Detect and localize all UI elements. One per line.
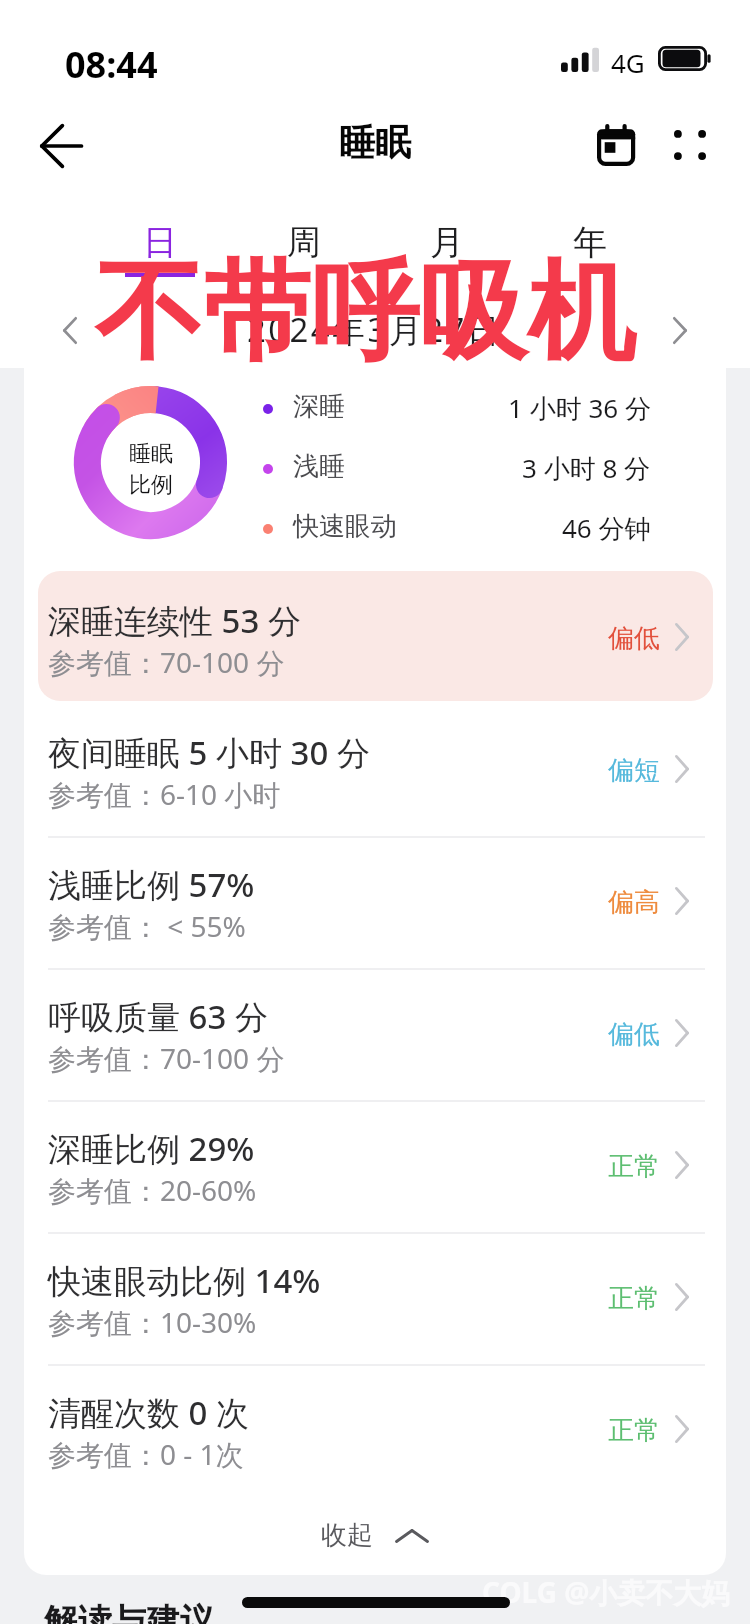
staticText: 46 分钟 <box>562 510 651 546</box>
staticText: 浅睡 <box>293 450 345 483</box>
button[interactable] <box>24 836 726 968</box>
staticText: 月 <box>430 221 464 264</box>
staticText: 不带呼吸机 <box>95 245 635 381</box>
staticText: 收起 <box>321 1519 373 1552</box>
staticText: 日 <box>143 221 177 264</box>
staticText: 深睡 <box>293 390 345 423</box>
staticText: 清醒次数 0 次 <box>48 1390 250 1435</box>
button[interactable] <box>38 571 713 701</box>
button[interactable] <box>24 1100 726 1232</box>
staticText: 深睡比例 29% <box>48 1126 255 1171</box>
button[interactable]: 年 <box>518 221 661 285</box>
staticText: 正常 <box>608 1150 660 1183</box>
staticText: 参考值：0 - 1次 <box>48 1435 244 1473</box>
staticText: 参考值： < 55% <box>48 907 246 945</box>
button[interactable]: Back <box>17 102 105 190</box>
staticText: 快速眼动 <box>293 510 397 543</box>
staticText: 3 小时 8 分 <box>522 450 651 486</box>
staticText: 偏短 <box>608 754 660 787</box>
staticText: 睡眠 <box>129 440 173 468</box>
staticText: 浅睡比例 57% <box>48 862 255 907</box>
staticText: 周 <box>287 221 321 264</box>
staticText: 参考值：10-30% <box>48 1303 257 1341</box>
button[interactable]: 日 <box>88 221 232 285</box>
staticText: 深睡连续性 53 分 <box>48 598 301 643</box>
staticText: 呼吸质量 63 分 <box>48 994 268 1039</box>
staticText: 正常 <box>608 1414 660 1447</box>
staticText: 2024年3月27日 <box>247 307 503 352</box>
staticText: 参考值：6-10 小时 <box>48 775 281 813</box>
staticText: 参考值：70-100 分 <box>48 1039 285 1077</box>
staticText: 夜间睡眠 5 小时 30 分 <box>48 730 370 775</box>
button[interactable]: Next day <box>636 286 724 374</box>
button[interactable]: 月 <box>375 221 518 285</box>
button[interactable]: Calendar <box>573 102 661 190</box>
staticText: 偏低 <box>608 622 660 655</box>
button[interactable] <box>24 704 726 836</box>
button[interactable] <box>24 1232 726 1364</box>
button[interactable] <box>24 1364 726 1496</box>
button[interactable]: 收起 <box>24 1496 726 1574</box>
button[interactable]: Previous day <box>26 286 114 374</box>
button[interactable] <box>24 968 726 1100</box>
button[interactable]: More options <box>646 101 734 189</box>
staticText: 4G <box>611 45 645 80</box>
staticText: 偏高 <box>608 886 660 919</box>
staticText: 参考值：20-60% <box>48 1171 257 1209</box>
staticText: COLG @小卖不大妈 <box>482 1573 730 1611</box>
staticText: 08:44 <box>65 40 158 89</box>
staticText: 偏低 <box>608 1018 660 1051</box>
staticText: 快速眼动比例 14% <box>48 1258 321 1303</box>
staticText: 年 <box>573 221 607 264</box>
staticText: 比例 <box>129 471 173 499</box>
staticText: 解读与建议 <box>44 1600 214 1624</box>
button[interactable]: 周 <box>232 221 375 285</box>
staticText: 参考值：70-100 分 <box>48 643 285 681</box>
staticText: 1 小时 36 分 <box>508 390 651 426</box>
staticText: 正常 <box>608 1282 660 1315</box>
staticText: 睡眠 <box>339 120 411 165</box>
